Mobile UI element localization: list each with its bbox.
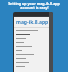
staticText: account is easy! [20,5,49,10]
staticText: mag-ik.8.app [16,19,49,26]
staticText: Setting up your mag-ik.8.app [8,1,60,6]
